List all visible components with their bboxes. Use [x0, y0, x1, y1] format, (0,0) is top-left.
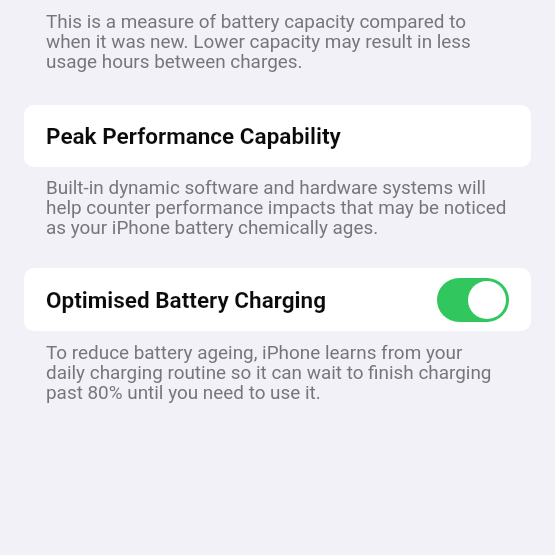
- button[interactable]: Optimised Battery Charging, on: [437, 278, 509, 322]
- staticText: To reduce battery ageing, iPhone learns …: [46, 341, 555, 404]
- button[interactable]: Optimised Battery Charging: [24, 268, 531, 331]
- staticText: Optimised Battery Charging: [46, 287, 327, 313]
- staticText: Peak Performance Capability: [46, 123, 341, 149]
- staticText: This is a measure of battery capacity co…: [46, 10, 555, 73]
- button[interactable]: Peak Performance Capability: [24, 105, 531, 167]
- staticText: Built-in dynamic software and hardware s…: [46, 176, 555, 239]
